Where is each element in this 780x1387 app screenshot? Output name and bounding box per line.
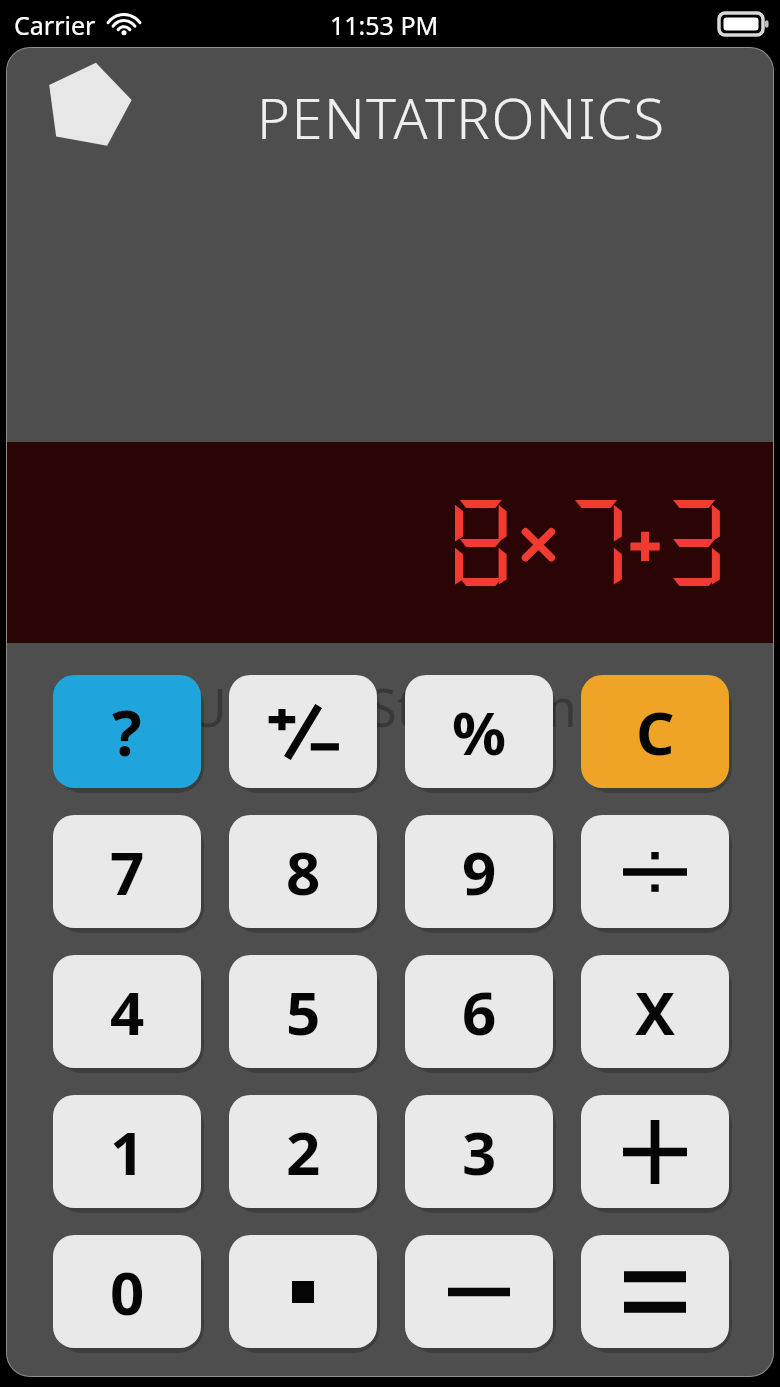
staticText: 8 <box>286 831 321 913</box>
staticText: ? <box>112 690 142 774</box>
button[interactable]: 2 <box>229 1095 377 1208</box>
button[interactable]: 5 <box>229 955 377 1068</box>
staticText: 0 <box>110 1251 145 1333</box>
staticText: 3 <box>462 1111 497 1193</box>
staticText: 11:53 PM <box>330 8 439 42</box>
staticText: 4 <box>110 971 145 1053</box>
button[interactable]: 8 <box>229 815 377 928</box>
button[interactable]: 0 <box>53 1235 201 1348</box>
button[interactable]: % <box>405 675 553 788</box>
staticText: 1 <box>110 1111 145 1193</box>
button[interactable]: - <box>405 1235 553 1348</box>
staticText: UpdateStar.com <box>189 671 577 742</box>
button[interactable]: ÷ <box>581 815 729 928</box>
button[interactable]: + <box>581 1095 729 1208</box>
button[interactable]: 3 <box>405 1095 553 1208</box>
button[interactable]: = <box>581 1235 729 1348</box>
button[interactable]: 7 <box>53 815 201 928</box>
staticText: C <box>636 691 675 773</box>
button[interactable]: X <box>581 955 729 1068</box>
staticText: 6 <box>462 971 497 1053</box>
staticText: 9 <box>462 831 497 913</box>
button[interactable]: +/- <box>229 675 377 788</box>
button[interactable]: 1 <box>53 1095 201 1208</box>
button[interactable]: C <box>581 675 729 788</box>
staticText: X <box>635 971 676 1053</box>
button[interactable]: 4 <box>53 955 201 1068</box>
button[interactable]: 9 <box>405 815 553 928</box>
button[interactable]: . <box>229 1235 377 1348</box>
staticText: 5 <box>286 971 321 1053</box>
staticText: PENTATRONICS <box>257 79 666 155</box>
staticText: 2 <box>286 1111 321 1193</box>
button[interactable]: ? <box>53 675 201 788</box>
button[interactable]: 6 <box>405 955 553 1068</box>
staticText: Carrier <box>14 8 96 42</box>
staticText: 7 <box>110 831 145 913</box>
staticText: % <box>452 691 507 773</box>
